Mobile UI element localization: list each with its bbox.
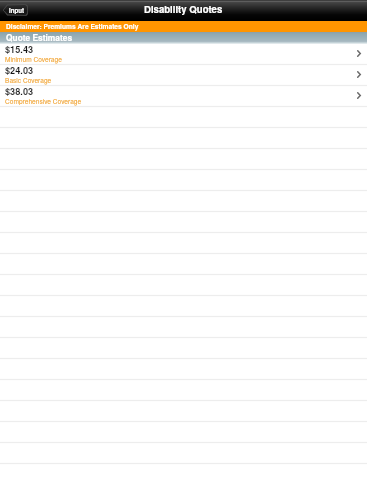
staticText: Disclaimer: Premiums Are Estimates Only (6, 22, 139, 32)
staticText: $38.03 (5, 85, 34, 98)
staticText: Comprehensive Coverage (5, 96, 82, 105)
staticText: Minimum Coverage (5, 54, 62, 63)
button[interactable]: $15.43 (0, 43, 367, 64)
staticText: $15.43 (5, 43, 34, 56)
button[interactable]: $38.03 (0, 85, 367, 106)
staticText: Disability Quotes (144, 2, 223, 16)
staticText: Quote Estimates (6, 32, 73, 44)
button[interactable]: Back to Input (2, 4, 28, 16)
staticText: $24.03 (5, 64, 34, 77)
button[interactable]: $24.03 (0, 64, 367, 85)
staticText: Input (9, 6, 25, 15)
staticText: Basic Coverage (5, 75, 52, 84)
